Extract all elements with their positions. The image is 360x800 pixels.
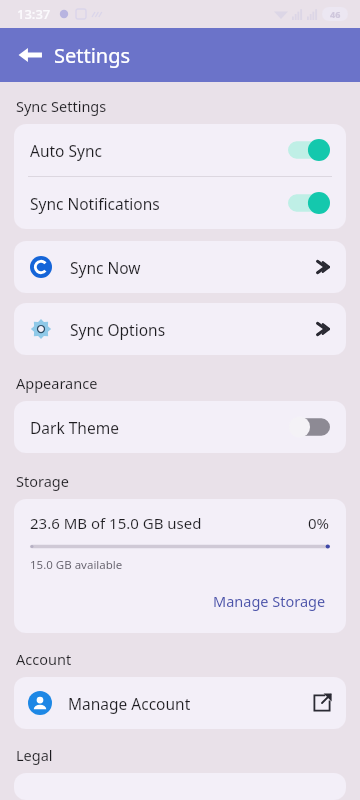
button[interactable]: Auto Sync: [14, 124, 346, 176]
staticText: Dark Theme: [30, 417, 119, 438]
staticText: Settings: [54, 42, 131, 69]
staticText: 23.6 MB of 15.0 GB used: [30, 513, 202, 533]
staticText: Sync Now: [70, 257, 141, 278]
staticText: Legal: [16, 745, 53, 765]
button[interactable]: Manage Account: [14, 677, 346, 729]
staticText: Sync Notifications: [30, 193, 160, 214]
button[interactable]: Manage Storage: [209, 589, 330, 613]
staticText: 46: [330, 8, 341, 20]
button[interactable]: Back: [8, 33, 52, 77]
button[interactable]: Sync Notifications: [14, 177, 346, 229]
staticText: 15.0 GB available: [30, 557, 123, 573]
staticText: Sync Settings: [16, 96, 107, 116]
button[interactable]: Sync Now: [14, 241, 346, 293]
staticText: 13:37: [17, 5, 51, 23]
staticText: Sync Options: [70, 319, 166, 340]
button[interactable]: Dark Theme: [14, 401, 346, 453]
staticText: Storage: [16, 471, 69, 491]
staticText: 0%: [308, 513, 330, 533]
staticText: Manage Storage: [213, 591, 326, 611]
staticText: Account: [16, 649, 72, 669]
staticText: Auto Sync: [30, 140, 102, 161]
staticText: Manage Account: [68, 693, 191, 714]
staticText: Appearance: [16, 373, 98, 393]
button[interactable]: Sync Options: [14, 303, 346, 355]
